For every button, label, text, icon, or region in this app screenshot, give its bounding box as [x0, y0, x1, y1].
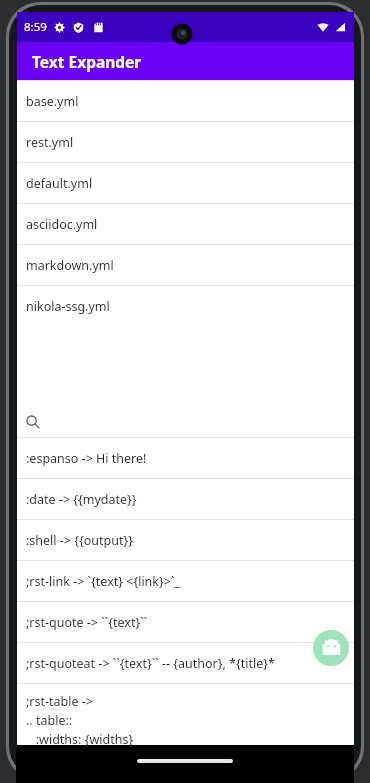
button[interactable]: Add expansion	[313, 630, 349, 666]
button[interactable]: ;rst-quoteat -> ``{text}`` -- {author}, …	[17, 642, 354, 683]
staticText: default.yml	[26, 175, 93, 192]
button[interactable]: markdown.yml	[17, 244, 354, 285]
staticText: :widths: {widths}	[26, 731, 134, 745]
staticText: ;rst-table ->	[26, 693, 93, 710]
staticText: Text Expander	[32, 51, 142, 72]
button[interactable]: nikola-ssg.yml	[17, 285, 354, 326]
staticText: base.yml	[26, 93, 79, 110]
staticText: .. table::	[26, 712, 73, 729]
button[interactable]: ;rst-link -> `{text} <{link}>`_	[17, 560, 354, 601]
button[interactable]: Search	[17, 406, 354, 437]
staticText: :shell -> {{output}}	[26, 532, 133, 549]
staticText: :date -> {{mydate}}	[26, 491, 137, 508]
button[interactable]: ;rst-table ->	[17, 683, 354, 745]
button[interactable]: :shell -> {{output}}	[17, 519, 354, 560]
staticText: asciidoc.yml	[26, 216, 98, 233]
button[interactable]: rest.yml	[17, 121, 354, 162]
button[interactable]: :date -> {{mydate}}	[17, 478, 354, 519]
staticText: :espanso -> Hi there!	[26, 450, 147, 467]
button[interactable]: ;rst-quote -> ``{text}``	[17, 601, 354, 642]
staticText: markdown.yml	[26, 257, 114, 274]
button[interactable]: :espanso -> Hi there!	[17, 437, 354, 478]
staticText: rest.yml	[26, 134, 74, 151]
button[interactable]: base.yml	[17, 80, 354, 121]
staticText: nikola-ssg.yml	[26, 298, 110, 315]
staticText: ;rst-quoteat -> ``{text}`` -- {author}, …	[26, 655, 275, 672]
button[interactable]: default.yml	[17, 162, 354, 203]
staticText: ;rst-link -> `{text} <{link}>`_	[26, 573, 180, 590]
staticText: ;rst-quote -> ``{text}``	[26, 614, 148, 631]
staticText: 8:59	[24, 19, 47, 35]
button[interactable]: asciidoc.yml	[17, 203, 354, 244]
